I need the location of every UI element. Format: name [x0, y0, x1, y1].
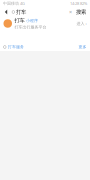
staticText: 进入 › [76, 21, 86, 26]
staticText: 中国移动 [3, 1, 19, 6]
staticText: 14:28 [70, 1, 79, 6]
staticText: 82% [80, 1, 87, 6]
staticText: 小程序 [26, 18, 38, 23]
button[interactable]: 打车 [0, 17, 90, 30]
staticText: 打车出行服务平台 [14, 25, 46, 30]
button[interactable]: 搜索 [74, 9, 88, 15]
button[interactable]: Back [2, 9, 10, 15]
staticText: 打车 [16, 9, 26, 15]
staticText: 4G [20, 1, 25, 6]
staticText: 更多 [78, 44, 86, 49]
button[interactable]: 打车服务 [0, 43, 90, 51]
staticText: 打车服务 [8, 44, 24, 49]
staticText: 搜索 [76, 9, 86, 15]
staticText: × [69, 8, 72, 16]
staticText: 打车 [14, 17, 24, 24]
